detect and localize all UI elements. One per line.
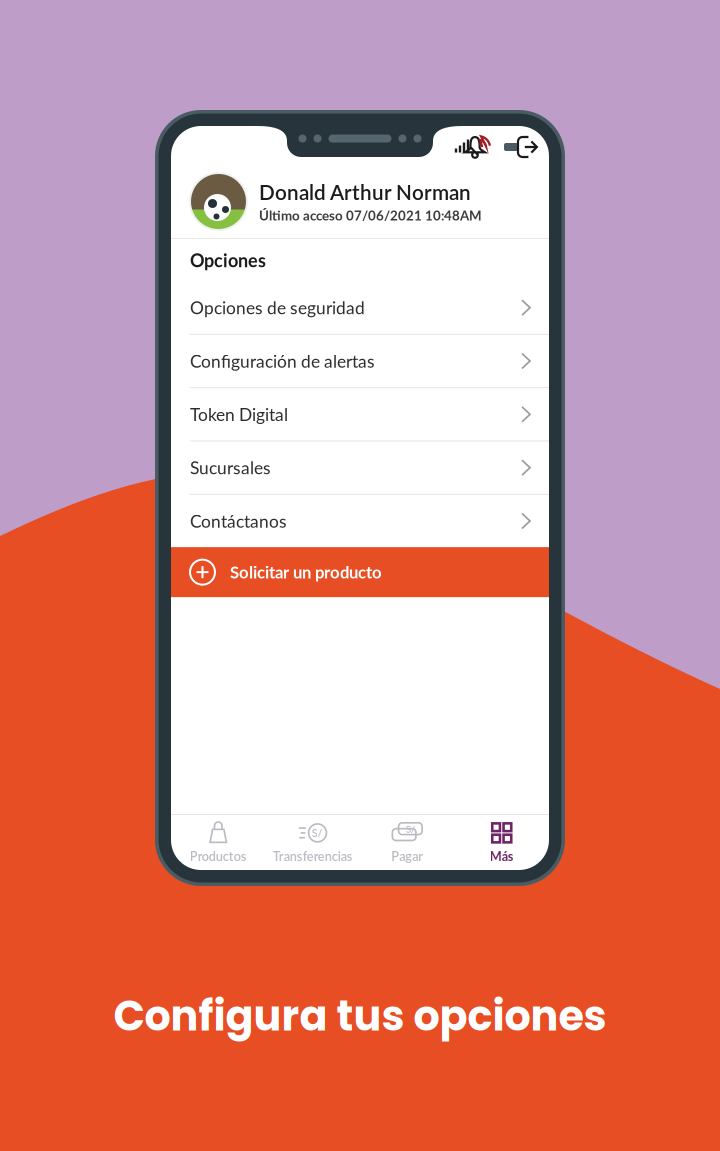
button[interactable]: Notificaciones: [454, 135, 496, 159]
staticText: Configuración de alertas: [190, 351, 375, 371]
staticText: Sucursales: [190, 457, 271, 478]
staticText: Solicitar un producto: [230, 562, 382, 582]
staticText: Productos: [190, 848, 247, 864]
button[interactable]: Opciones de seguridad: [171, 281, 549, 334]
staticText: Opciones de seguridad: [190, 297, 365, 318]
staticText: Último acceso 07/06/2021 10:48AM: [259, 207, 482, 223]
staticText: Token Digital: [190, 404, 288, 425]
staticText: Transferencias: [273, 848, 353, 864]
button[interactable]: Cerrar sesión: [505, 135, 541, 159]
button[interactable]: Pagar: [360, 815, 454, 869]
button[interactable]: Solicitar un producto: [171, 547, 549, 597]
staticText: S/: [406, 823, 416, 835]
staticText: Pagar: [391, 848, 423, 864]
button[interactable]: Transferencias: [265, 815, 360, 869]
staticText: S/: [312, 826, 323, 839]
button[interactable]: Sucursales: [171, 441, 549, 494]
button[interactable]: Token Digital: [171, 388, 549, 440]
button[interactable]: Contáctanos: [171, 495, 549, 547]
staticText: Opciones: [190, 249, 266, 271]
staticText: Contáctanos: [190, 511, 287, 531]
staticText: Más: [490, 848, 514, 864]
button[interactable]: Productos: [171, 815, 265, 869]
button[interactable]: Configuración de alertas: [171, 335, 549, 387]
button[interactable]: Más: [454, 815, 549, 869]
staticText: Configura tus opciones: [113, 987, 606, 1045]
staticText: Donald Arthur Norman: [259, 180, 471, 204]
